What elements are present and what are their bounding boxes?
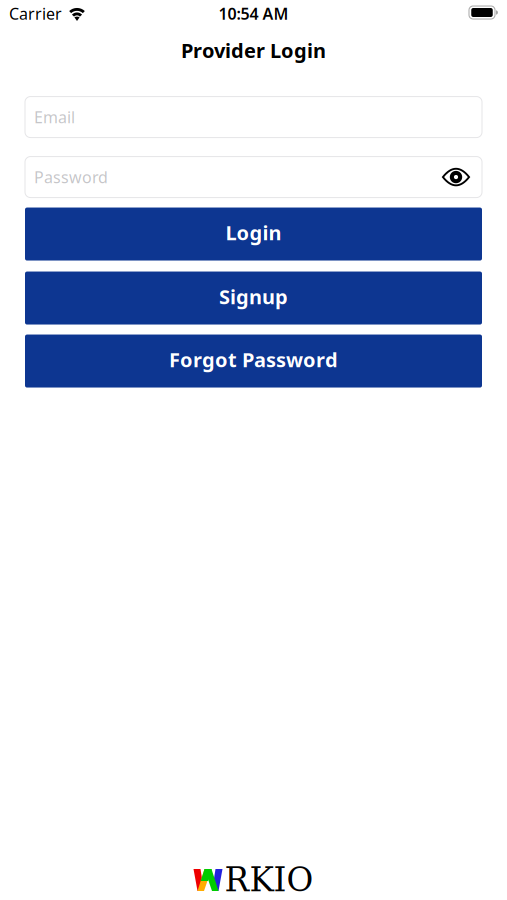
button[interactable]: Login — [25, 208, 482, 261]
staticText: 10:54 AM — [218, 3, 288, 24]
staticText: Login — [225, 219, 281, 246]
staticText: Forgot Password — [169, 346, 338, 373]
staticText: Provider Login — [181, 37, 326, 64]
button[interactable]: Signup — [25, 272, 482, 325]
staticText: Email — [34, 106, 75, 128]
staticText: Carrier — [9, 3, 62, 24]
staticText: RKIO — [224, 861, 313, 899]
staticText: Signup — [219, 283, 288, 310]
button[interactable]: Show password — [442, 168, 470, 186]
button[interactable]: Forgot Password — [25, 335, 482, 388]
staticText: Password — [34, 166, 108, 188]
